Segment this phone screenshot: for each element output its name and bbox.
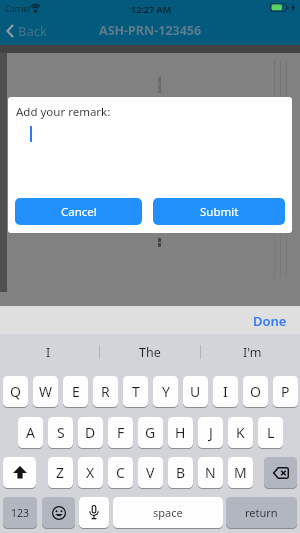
staticText: return <box>245 505 278 520</box>
staticText: Y <box>162 382 170 401</box>
button[interactable]: 123 <box>3 497 37 528</box>
staticText: Submit <box>200 204 239 220</box>
staticText: V <box>146 463 155 482</box>
staticText: U <box>190 382 201 401</box>
button[interactable]: U <box>183 376 208 407</box>
button[interactable]: N <box>198 457 223 488</box>
button[interactable]: B <box>168 457 193 488</box>
button[interactable]: return <box>226 497 297 528</box>
button[interactable]: V <box>138 457 163 488</box>
button[interactable]: M <box>228 457 253 488</box>
button[interactable]: J <box>198 417 223 448</box>
staticText: E <box>72 382 80 401</box>
staticText: N <box>205 463 216 482</box>
button[interactable]: I'm <box>224 334 280 370</box>
staticText: Back <box>18 22 47 40</box>
button[interactable]: Submit <box>153 198 285 225</box>
button[interactable] <box>79 497 109 528</box>
button[interactable]: Back <box>6 17 47 45</box>
button[interactable] <box>264 457 297 488</box>
button[interactable]: C <box>108 457 133 488</box>
staticText: The <box>139 344 161 361</box>
staticText: remark <box>155 76 162 94</box>
staticText: Z <box>56 463 65 482</box>
staticText: D <box>85 423 96 442</box>
button[interactable]: Y <box>153 376 178 407</box>
button[interactable]: space <box>113 497 223 528</box>
staticText: I <box>223 382 228 401</box>
staticText: space <box>153 505 183 520</box>
staticText: C <box>116 463 125 482</box>
staticText: 123 <box>11 506 30 520</box>
staticText: G <box>145 423 156 442</box>
button[interactable]: H <box>168 417 193 448</box>
button[interactable] <box>42 497 75 528</box>
button[interactable]: G <box>138 417 163 448</box>
button[interactable]: F <box>108 417 133 448</box>
staticText: H <box>175 423 186 442</box>
button[interactable]: P <box>273 376 298 407</box>
button[interactable]: X <box>78 457 103 488</box>
staticText: Carrier <box>5 3 32 14</box>
staticText: M <box>234 463 247 482</box>
button[interactable]: K <box>228 417 253 448</box>
button[interactable]: I <box>20 334 76 370</box>
button[interactable]: D <box>78 417 103 448</box>
button[interactable]: R <box>93 376 118 407</box>
staticText: T <box>132 382 140 401</box>
staticText: B <box>176 463 186 482</box>
staticText: X <box>86 463 95 482</box>
staticText: Cancel <box>61 204 97 220</box>
button[interactable]: The <box>122 334 178 370</box>
button[interactable]: W <box>33 376 58 407</box>
button[interactable] <box>3 457 36 488</box>
button[interactable]: E <box>63 376 88 407</box>
staticText: J <box>209 423 213 442</box>
button[interactable]: I <box>213 376 238 407</box>
staticText: 12:27 AM <box>131 3 172 15</box>
button[interactable]: Cancel <box>15 198 142 225</box>
staticText: S <box>57 423 65 442</box>
staticText: Done <box>253 312 287 330</box>
button[interactable]: A <box>18 417 43 448</box>
button[interactable]: S <box>48 417 73 448</box>
staticText: Add your remark: <box>16 104 111 120</box>
staticText: R <box>101 382 110 401</box>
staticText: I <box>46 344 51 361</box>
staticText: K <box>236 423 245 442</box>
staticText: F <box>117 423 125 442</box>
button[interactable]: T <box>123 376 148 407</box>
staticText: P <box>281 382 290 401</box>
button[interactable]: O <box>243 376 268 407</box>
staticText: ASH-PRN-123456 <box>99 22 202 39</box>
staticText: O <box>250 382 261 401</box>
staticText: I'm <box>243 344 262 361</box>
staticText: W <box>39 382 53 401</box>
staticText: L <box>267 423 275 442</box>
button[interactable]: L <box>258 417 283 448</box>
button[interactable]: Q <box>3 376 28 407</box>
staticText: A <box>26 423 35 442</box>
button[interactable]: Z <box>48 457 73 488</box>
button[interactable]: Done <box>248 309 292 333</box>
staticText: Q <box>10 382 21 401</box>
